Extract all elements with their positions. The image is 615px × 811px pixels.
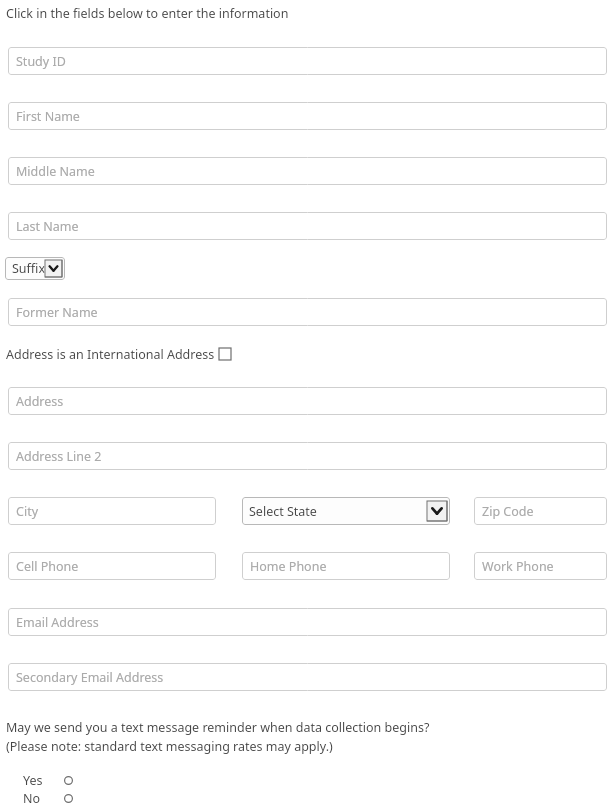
button[interactable]: Address Line 2: [8, 442, 607, 470]
staticText: Home Phone: [250, 558, 327, 575]
button[interactable]: Secondary Email Address: [8, 663, 607, 691]
button[interactable]: No: [18, 789, 88, 807]
staticText: Address is an International Address: [6, 346, 215, 363]
button[interactable]: Last Name: [8, 212, 607, 240]
staticText: Address Line 2: [16, 448, 102, 465]
button[interactable]: Work Phone: [474, 552, 607, 580]
staticText: Former Name: [16, 304, 98, 321]
other: Yes radio button: [64, 776, 73, 785]
staticText: Yes: [23, 772, 43, 789]
button[interactable]: Email Address: [8, 608, 607, 636]
staticText: Last Name: [16, 218, 79, 235]
staticText: (Please note: standard text messaging ra…: [6, 738, 333, 755]
button[interactable]: Select State: [242, 497, 450, 525]
button[interactable]: Home Phone: [242, 552, 450, 580]
staticText: First Name: [16, 108, 80, 125]
staticText: Address: [16, 393, 64, 410]
button[interactable]: Former Name: [8, 298, 607, 326]
staticText: Secondary Email Address: [16, 669, 164, 686]
staticText: No: [23, 790, 41, 807]
button[interactable]: Address is an International Address: [6, 345, 231, 363]
button[interactable]: Suffix: [5, 257, 65, 280]
staticText: City: [16, 503, 39, 520]
button[interactable]: City: [8, 497, 216, 525]
staticText: Zip Code: [482, 503, 534, 520]
button[interactable]: Middle Name: [8, 157, 607, 185]
staticText: Study ID: [16, 53, 66, 70]
button[interactable]: Cell Phone: [8, 552, 216, 580]
staticText: Middle Name: [16, 163, 95, 180]
staticText: Cell Phone: [16, 558, 79, 575]
button[interactable]: Zip Code: [474, 497, 607, 525]
button[interactable]: First Name: [8, 102, 607, 130]
other: No radio button: [64, 794, 73, 803]
staticText: May we send you a text message reminder …: [6, 719, 430, 736]
button[interactable]: Study ID: [8, 47, 607, 75]
button[interactable]: Address: [8, 387, 607, 415]
staticText: Email Address: [16, 614, 99, 631]
staticText: Click in the fields below to enter the i…: [6, 5, 289, 22]
other: International address checkbox: [219, 348, 231, 360]
staticText: Suffix: [12, 260, 46, 277]
staticText: Work Phone: [482, 558, 554, 575]
staticText: Select State: [249, 503, 317, 520]
button[interactable]: Yes: [18, 771, 88, 789]
